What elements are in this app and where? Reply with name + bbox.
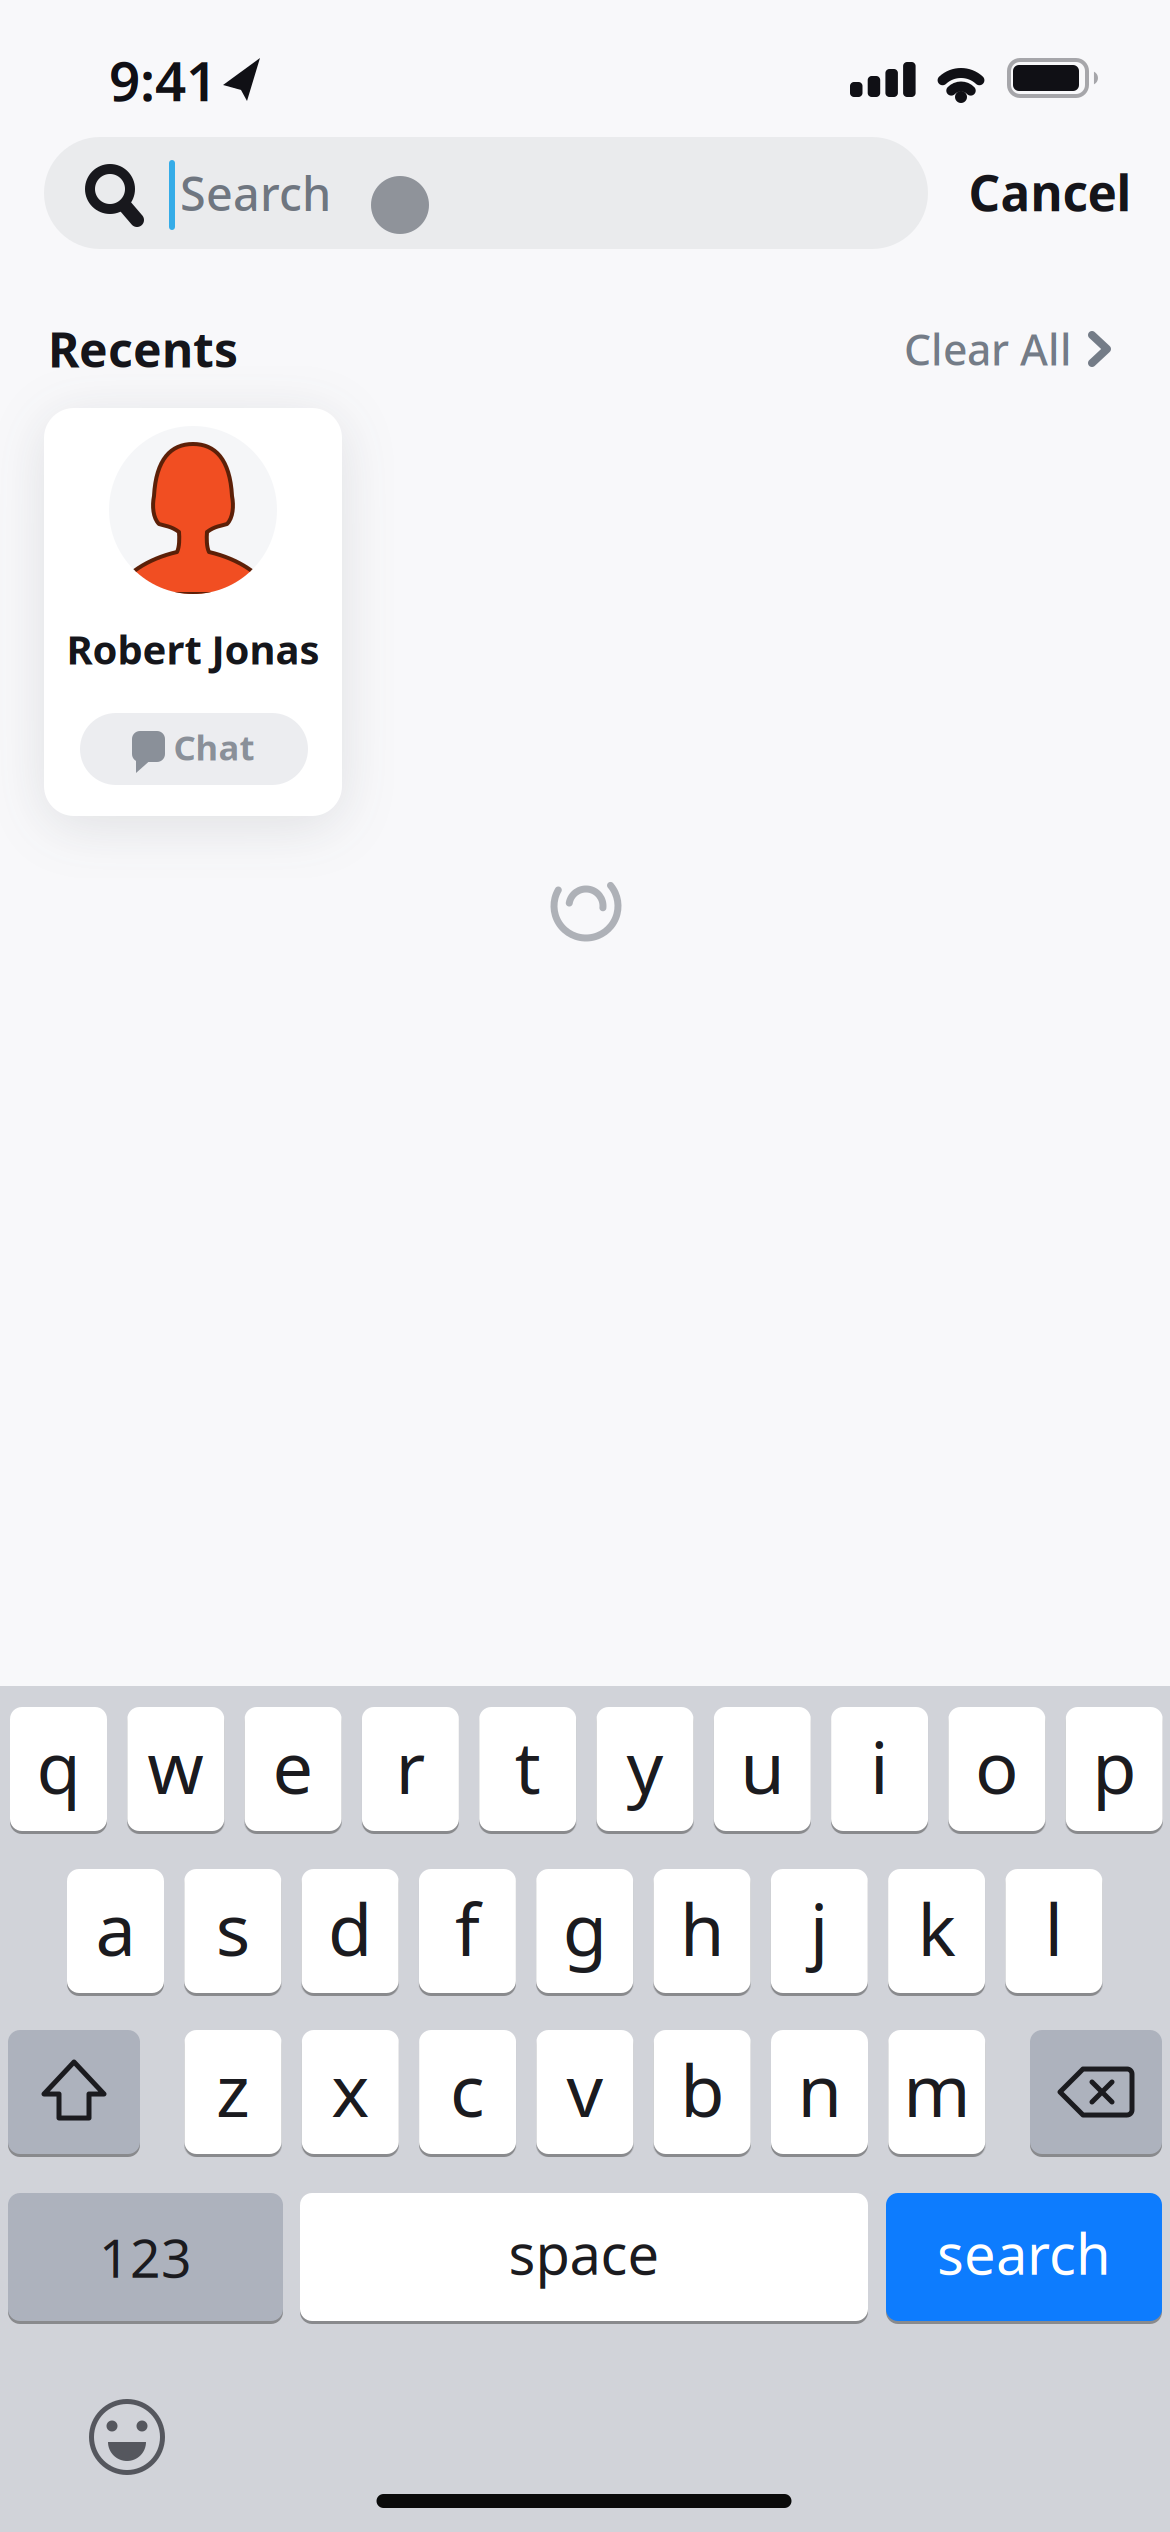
- staticText: Cancel: [968, 159, 1131, 225]
- button[interactable]: v: [536, 2030, 633, 2154]
- staticText: s: [216, 1880, 250, 1976]
- button[interactable]: Robert Jonas: [44, 408, 342, 816]
- staticText: Chat: [173, 724, 254, 770]
- staticText: g: [563, 1880, 607, 1976]
- button[interactable]: y: [596, 1707, 693, 1831]
- button[interactable]: z: [184, 2030, 281, 2154]
- staticText: y: [626, 1718, 663, 1814]
- staticText: Recents: [48, 317, 238, 381]
- staticText: h: [680, 1880, 724, 1976]
- staticText: u: [740, 1718, 784, 1814]
- staticText: v: [566, 2041, 603, 2137]
- button[interactable]: a: [67, 1869, 164, 1993]
- staticText: l: [1044, 1880, 1063, 1976]
- button[interactable]: b: [654, 2030, 751, 2154]
- staticText: n: [797, 2041, 841, 2137]
- staticText: Robert Jonas: [66, 622, 319, 675]
- button[interactable]: i: [831, 1707, 928, 1831]
- staticText: space: [508, 2216, 659, 2290]
- staticText: 9:41: [109, 44, 217, 116]
- button[interactable]: l: [1005, 1869, 1102, 1993]
- staticText: e: [273, 1718, 314, 1814]
- staticText: t: [515, 1718, 541, 1814]
- button[interactable]: n: [771, 2030, 868, 2154]
- staticText: search: [937, 2216, 1111, 2290]
- staticText: p: [1092, 1718, 1136, 1814]
- staticText: a: [95, 1880, 135, 1976]
- staticText: w: [147, 1718, 204, 1814]
- button[interactable]: q: [10, 1707, 107, 1831]
- button[interactable]: Cancel: [968, 159, 1131, 225]
- button[interactable]: Chat: [80, 713, 308, 785]
- button[interactable]: k: [888, 1869, 985, 1993]
- button[interactable]: search: [886, 2193, 1162, 2321]
- button[interactable]: [8, 2030, 140, 2154]
- button[interactable]: f: [419, 1869, 516, 1993]
- button[interactable]: j: [771, 1869, 868, 1993]
- staticText: Clear All: [904, 321, 1072, 377]
- button[interactable]: m: [888, 2030, 985, 2154]
- button[interactable]: c: [419, 2030, 516, 2154]
- staticText: d: [328, 1880, 372, 1976]
- staticText: m: [903, 2041, 970, 2137]
- staticText: x: [331, 2041, 369, 2137]
- staticText: r: [395, 1718, 425, 1814]
- button[interactable]: p: [1066, 1707, 1163, 1831]
- button[interactable]: e: [245, 1707, 342, 1831]
- button[interactable]: x: [302, 2030, 399, 2154]
- button[interactable]: g: [536, 1869, 633, 1993]
- staticText: Search: [180, 162, 331, 224]
- staticText: c: [450, 2041, 485, 2137]
- button[interactable]: 123: [8, 2193, 283, 2321]
- button[interactable]: d: [302, 1869, 399, 1993]
- staticText: k: [918, 1880, 956, 1976]
- button[interactable]: Clear All: [908, 320, 1118, 378]
- button[interactable]: [1030, 2030, 1162, 2154]
- button[interactable]: w: [127, 1707, 224, 1831]
- button[interactable]: r: [362, 1707, 459, 1831]
- staticText: 123: [99, 2222, 192, 2292]
- staticText: j: [810, 1880, 829, 1976]
- button[interactable]: h: [653, 1869, 750, 1993]
- button[interactable]: Search: [44, 137, 928, 249]
- staticText: f: [455, 1880, 480, 1976]
- staticText: i: [870, 1718, 889, 1814]
- button[interactable]: o: [948, 1707, 1045, 1831]
- button[interactable]: space: [300, 2193, 868, 2321]
- staticText: o: [975, 1718, 1019, 1814]
- staticText: b: [680, 2041, 724, 2137]
- button[interactable]: s: [184, 1869, 281, 1993]
- staticText: z: [216, 2041, 250, 2137]
- button[interactable]: u: [714, 1707, 811, 1831]
- staticText: q: [36, 1718, 80, 1814]
- button[interactable]: [83, 2393, 171, 2481]
- button[interactable]: t: [479, 1707, 576, 1831]
